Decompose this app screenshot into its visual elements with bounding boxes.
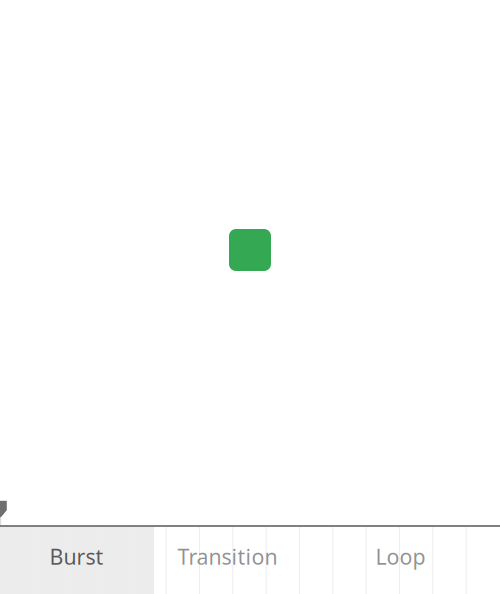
staticText: Loop — [375, 542, 425, 571]
staticText: Burst — [49, 542, 103, 571]
button[interactable]: Loop — [300, 527, 500, 594]
button[interactable]: Transition — [153, 527, 300, 594]
button[interactable]: Burst — [0, 527, 153, 594]
staticText: Transition — [177, 542, 277, 571]
